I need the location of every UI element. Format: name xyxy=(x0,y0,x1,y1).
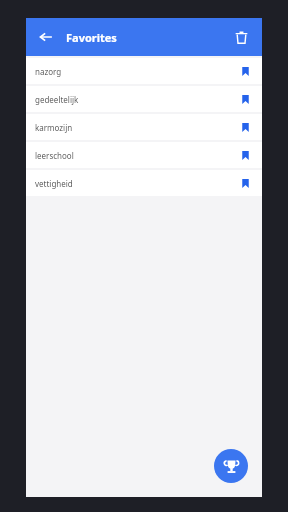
button[interactable]: Back xyxy=(33,24,59,50)
button[interactable]: Achievements xyxy=(214,449,248,483)
staticText: karmozijn xyxy=(35,122,237,133)
button[interactable]: leerschool xyxy=(26,142,262,168)
button[interactable]: gedeeltelijk xyxy=(26,86,262,112)
button[interactable]: vettigheid xyxy=(26,170,262,196)
button[interactable]: Delete all favorites xyxy=(228,24,254,50)
button[interactable]: Remove bookmark xyxy=(237,63,253,79)
staticText: nazorg xyxy=(35,66,237,77)
button[interactable]: Remove bookmark xyxy=(237,119,253,135)
staticText: vettigheid xyxy=(35,178,237,189)
button[interactable]: nazorg xyxy=(26,58,262,84)
staticText: gedeeltelijk xyxy=(35,94,237,105)
button[interactable]: Remove bookmark xyxy=(237,91,253,107)
staticText: leerschool xyxy=(35,150,237,161)
staticText: Favorites xyxy=(66,30,117,45)
button[interactable]: Remove bookmark xyxy=(237,147,253,163)
button[interactable]: Remove bookmark xyxy=(237,175,253,191)
button[interactable]: karmozijn xyxy=(26,114,262,140)
